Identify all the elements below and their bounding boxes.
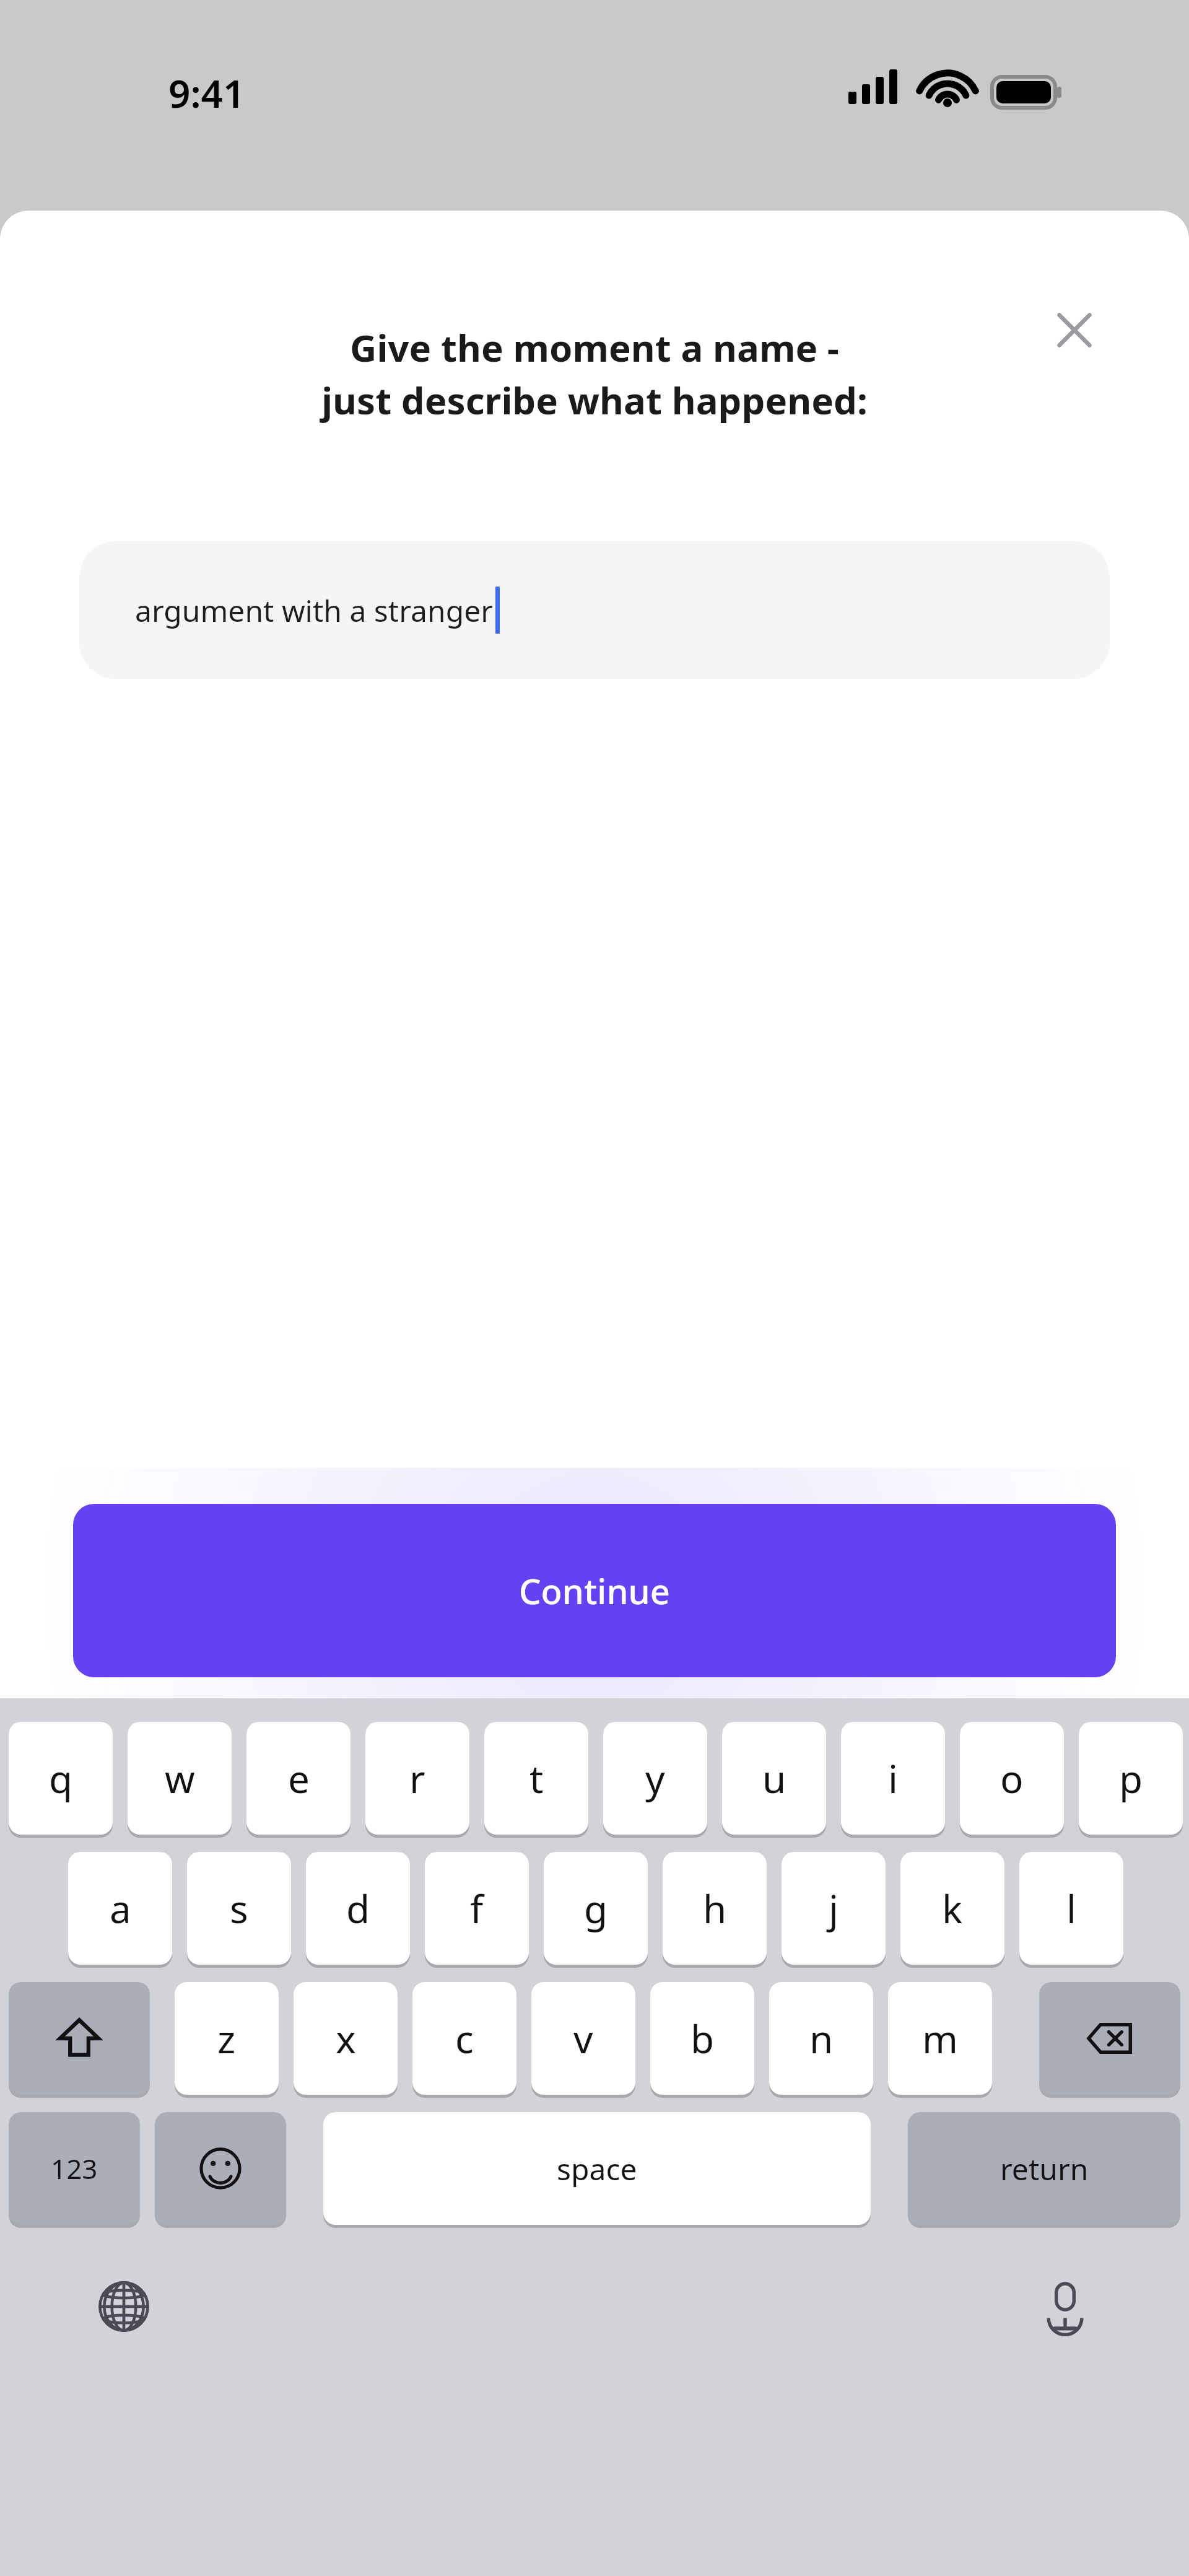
staticText: a [110,1882,131,1934]
button[interactable]: i [841,1722,945,1835]
staticText: argument with a stranger [135,590,494,631]
button[interactable]: y [603,1722,707,1835]
staticText: i [888,1752,898,1804]
button[interactable]: p [1079,1722,1183,1835]
staticText: 9:41 [168,67,245,119]
button[interactable]: Emoji [155,2112,286,2225]
button[interactable]: x [294,1982,398,2095]
staticText: j [829,1882,838,1934]
button[interactable]: e [246,1722,351,1835]
button[interactable]: Backspace [1039,1982,1180,2095]
staticText: d [346,1882,370,1934]
staticText: x [336,2012,356,2064]
button[interactable]: d [306,1852,410,1965]
staticText: b [690,2012,715,2064]
staticText: t [529,1752,544,1804]
button[interactable]: b [650,1982,754,2095]
staticText: e [288,1752,310,1804]
button[interactable]: z [175,1982,279,2095]
staticText: Give the moment a name - just describe w… [321,322,868,425]
staticText: p [1119,1752,1143,1804]
staticText: v [573,2012,593,2064]
staticText: m [922,2012,958,2064]
button[interactable]: n [769,1982,873,2095]
button[interactable]: Shift [9,1982,150,2095]
staticText: l [1066,1882,1076,1934]
staticText: r [409,1752,425,1804]
staticText: z [217,2012,236,2064]
staticText: s [230,1882,248,1934]
button[interactable]: c [412,1982,516,2095]
button[interactable]: l [1019,1852,1123,1965]
staticText: return [1000,2149,1089,2189]
staticText: f [470,1882,484,1934]
staticText: w [165,1752,195,1804]
button[interactable]: Close [1028,284,1121,377]
button[interactable]: j [782,1852,886,1965]
staticText: space [557,2149,637,2189]
staticText: o [1000,1752,1024,1804]
button[interactable]: 123 [9,2112,140,2225]
button[interactable]: h [663,1852,767,1965]
staticText: c [455,2012,474,2064]
button[interactable]: t [484,1722,588,1835]
button[interactable]: a [68,1852,172,1965]
button[interactable]: v [531,1982,635,2095]
staticText: u [762,1752,786,1804]
staticText: q [49,1752,73,1804]
button[interactable]: Dictation [1016,2257,1115,2356]
staticText: h [703,1882,727,1934]
button[interactable]: g [544,1852,648,1965]
button[interactable]: q [9,1722,113,1835]
button[interactable]: o [960,1722,1064,1835]
staticText: y [645,1752,665,1804]
button[interactable]: s [187,1852,291,1965]
button[interactable]: m [888,1982,992,2095]
button[interactable]: f [425,1852,529,1965]
button[interactable]: Change keyboard language [74,2257,173,2356]
staticText: 123 [51,2150,98,2187]
button[interactable]: space [323,2112,871,2225]
button[interactable]: k [900,1852,1004,1965]
staticText: n [809,2012,834,2064]
staticText: g [584,1882,608,1934]
button[interactable]: u [722,1722,826,1835]
button[interactable]: w [128,1722,232,1835]
staticText: k [942,1882,963,1934]
button[interactable]: argument with a stranger [79,541,1110,679]
button[interactable]: Continue [73,1504,1116,1677]
button[interactable]: r [365,1722,469,1835]
staticText: Continue [519,1567,670,1614]
button[interactable]: return [908,2112,1180,2225]
